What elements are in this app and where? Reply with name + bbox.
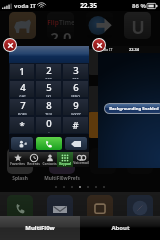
staticText: Keypad <box>59 162 71 166</box>
staticText: 9 <box>73 99 79 112</box>
button[interactable] <box>127 148 153 174</box>
staticText: DEF <box>72 77 79 79</box>
staticText: 22.35 <box>80 1 97 10</box>
staticText: MultiFl0w <box>25 224 55 232</box>
button[interactable]: 4 <box>10 81 34 97</box>
staticText: voda IT <box>99 47 113 52</box>
button[interactable] <box>90 148 116 174</box>
button[interactable] <box>9 112 35 138</box>
button[interactable] <box>87 195 113 221</box>
button[interactable]: 1 <box>10 64 34 79</box>
staticText: Recents <box>27 162 40 166</box>
staticText: 0 <box>46 117 52 130</box>
button[interactable]: 9 <box>63 99 88 115</box>
staticText: U <box>131 15 145 39</box>
button[interactable] <box>125 112 151 138</box>
button[interactable]: 7 <box>10 99 34 115</box>
staticText: JKL <box>46 94 52 97</box>
button[interactable]: # <box>63 117 88 133</box>
staticText: 86 % <box>132 2 146 10</box>
staticText: 3 <box>73 64 79 77</box>
button[interactable] <box>127 195 153 221</box>
button[interactable]: Flip <box>47 12 74 39</box>
staticText: voda IT <box>14 2 36 10</box>
button[interactable] <box>47 195 73 221</box>
button[interactable]: Voicemail <box>73 152 89 167</box>
staticText: * <box>19 119 25 132</box>
button[interactable] <box>86 12 113 39</box>
button[interactable] <box>125 49 151 75</box>
staticText: Splash <box>12 175 28 182</box>
button[interactable]: About <box>80 216 160 240</box>
button[interactable]: 0 <box>36 117 61 133</box>
button[interactable]: Contacts <box>41 152 57 167</box>
button[interactable]: * <box>10 117 34 133</box>
staticText: TUV <box>45 112 52 115</box>
button[interactable] <box>7 195 33 221</box>
staticText: ABC <box>45 77 52 79</box>
staticText: Voicemail <box>73 161 89 165</box>
button[interactable] <box>7 148 33 174</box>
staticText: 22.34 <box>129 47 139 52</box>
staticText: MultiFl0wPrefs <box>44 175 80 182</box>
staticText: About <box>111 224 130 232</box>
staticText: Favorites <box>10 162 25 166</box>
button[interactable]: Close app <box>4 39 16 51</box>
staticText: PQRS <box>18 112 27 115</box>
button[interactable]: Delete <box>65 137 87 150</box>
staticText: # <box>72 119 79 132</box>
button[interactable]: 8 <box>36 99 61 115</box>
button[interactable] <box>49 148 75 174</box>
staticText: 8 <box>46 99 52 112</box>
button[interactable] <box>125 86 151 112</box>
button[interactable]: Keypad <box>57 152 73 167</box>
button[interactable] <box>48 112 74 138</box>
button[interactable] <box>9 12 36 39</box>
staticText: WXYZ <box>71 112 81 115</box>
staticText: 5 <box>46 81 52 94</box>
staticText: Backgrounding Enabled <box>109 106 159 112</box>
button[interactable]: 2 <box>36 64 61 79</box>
button[interactable]: Close app <box>93 39 105 51</box>
staticText: 6 <box>73 81 79 94</box>
staticText: 2 <box>46 64 52 77</box>
button[interactable] <box>48 49 74 75</box>
button[interactable]: 6 <box>63 81 88 97</box>
button[interactable] <box>86 112 112 138</box>
staticText: 1 <box>19 65 25 78</box>
button[interactable]: Recents <box>25 152 41 167</box>
staticText: + <box>48 130 50 133</box>
staticText: 2.0 <box>50 27 72 39</box>
staticText: Time <box>59 18 74 27</box>
staticText: GHI <box>19 94 26 97</box>
button[interactable] <box>86 49 112 75</box>
button[interactable]: Call <box>36 137 62 150</box>
button[interactable] <box>86 86 112 112</box>
button[interactable] <box>48 86 74 112</box>
button[interactable]: Add contact <box>11 137 33 150</box>
staticText: MNO <box>71 94 80 97</box>
button[interactable] <box>9 86 35 112</box>
button[interactable]: Favorites <box>9 152 25 167</box>
button[interactable]: MultiFl0w <box>0 216 80 240</box>
button[interactable]: 3 <box>63 64 88 79</box>
staticText: 7 <box>20 99 26 112</box>
button[interactable]: 5 <box>36 81 61 97</box>
button[interactable]: Backgrounding Enabled <box>105 104 160 113</box>
staticText: Contacts <box>42 162 57 166</box>
button[interactable]: U <box>124 12 151 39</box>
staticText: 4 <box>20 81 26 94</box>
button[interactable] <box>9 49 35 75</box>
staticText: Flip <box>47 18 59 27</box>
